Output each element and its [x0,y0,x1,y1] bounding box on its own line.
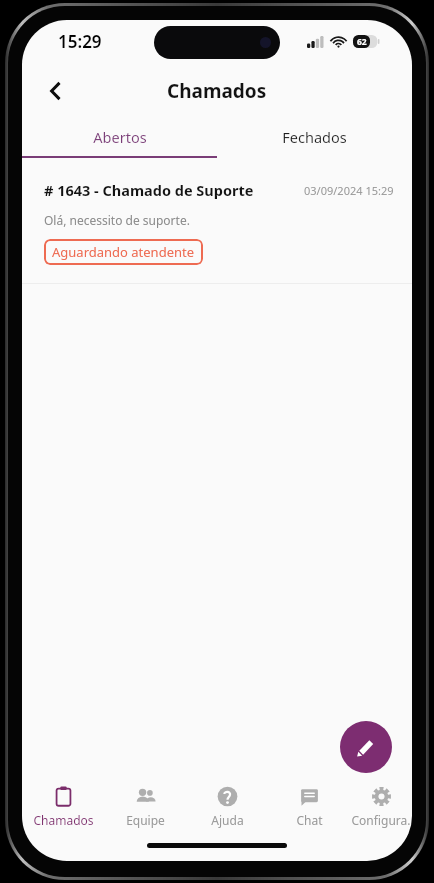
button[interactable]: # 1643 - Chamado de Suporte [22,158,412,283]
button[interactable]: Aguardando atendente [44,239,203,265]
button[interactable]: Ajuda [186,779,268,835]
button[interactable]: Fechados [217,118,412,156]
button[interactable]: Abertos [22,118,217,156]
button[interactable]: Novo chamado [340,721,392,773]
staticText: Chamados [33,812,94,828]
staticText: Chat [296,812,323,828]
button[interactable]: Equipe [104,779,186,835]
staticText: Abertos [93,127,147,147]
staticText: Chamados [167,78,267,104]
staticText: 15:29 [58,30,102,53]
staticText: # 1643 - Chamado de Suporte [44,180,254,200]
button[interactable]: Configura... [350,779,412,835]
staticText: Olá, necessito de suporte. [44,212,190,228]
staticText: Fechados [282,127,347,147]
button[interactable]: Chamados [22,779,104,835]
button[interactable]: Voltar [34,69,78,113]
staticText: 62 [357,36,367,48]
button[interactable]: Chat [268,779,350,835]
staticText: Equipe [126,812,165,828]
staticText: Configura... [350,812,412,835]
staticText: 03/09/2024 15:29 [304,183,394,198]
staticText: Aguardando atendente [52,243,195,261]
staticText: Ajuda [211,812,244,828]
